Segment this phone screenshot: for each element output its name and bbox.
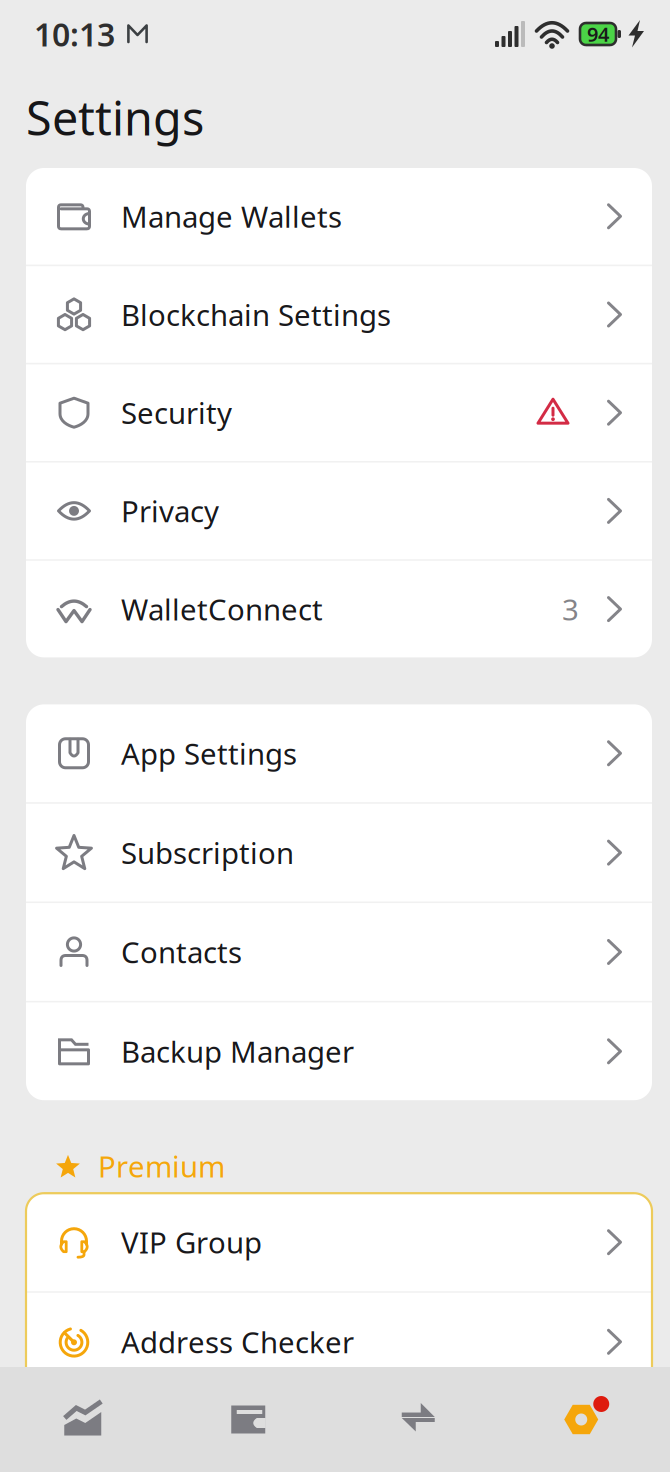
staticText: Subscription <box>121 833 294 872</box>
staticText: Settings <box>26 86 204 148</box>
button[interactable]: Contacts <box>26 903 652 1001</box>
button[interactable]: Subscription <box>26 804 652 902</box>
staticText: Address Checker <box>121 1322 354 1361</box>
staticText: Premium <box>98 1147 225 1186</box>
button[interactable]: WalletConnect <box>26 561 652 657</box>
staticText: WalletConnect <box>121 590 323 629</box>
staticText: Privacy <box>121 491 219 530</box>
button[interactable]: VIP Group <box>26 1193 652 1291</box>
button[interactable]: Security <box>26 364 652 461</box>
button[interactable]: App Settings <box>26 704 652 802</box>
staticText: 3 <box>562 590 579 629</box>
button[interactable]: Markets <box>0 1367 167 1472</box>
button[interactable]: Exchange <box>335 1367 502 1472</box>
staticText: Security <box>121 393 232 432</box>
button[interactable]: Backup Manager <box>26 1002 652 1100</box>
button[interactable]: Blockchain Settings <box>26 266 652 363</box>
staticText: Backup Manager <box>121 1032 354 1071</box>
button[interactable]: Wallet <box>167 1367 335 1472</box>
staticText: 94 <box>587 21 609 47</box>
button[interactable]: Manage Wallets <box>26 168 652 265</box>
staticText: VIP Group <box>121 1223 262 1262</box>
button[interactable]: Settings <box>502 1367 670 1472</box>
button[interactable]: Privacy <box>26 463 652 559</box>
staticText: Manage Wallets <box>121 197 342 236</box>
staticText: 10:13 <box>34 13 115 55</box>
staticText: Blockchain Settings <box>121 295 391 334</box>
button[interactable]: Address Checker <box>26 1293 652 1391</box>
staticText: App Settings <box>121 734 297 773</box>
staticText: Contacts <box>121 932 242 971</box>
